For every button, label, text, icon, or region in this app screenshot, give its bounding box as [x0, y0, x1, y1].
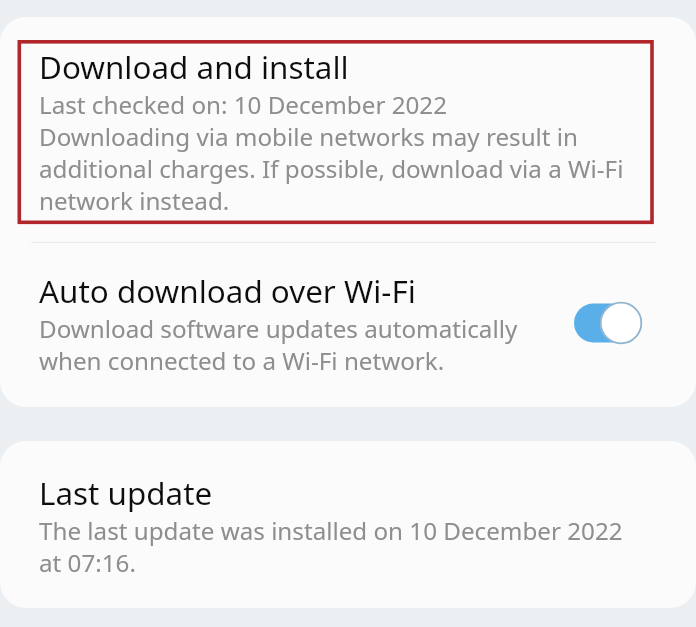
button[interactable]: Download and install — [0, 17, 696, 242]
button[interactable]: Auto download over Wi-Fi toggle — [573, 301, 642, 345]
staticText: Last checked on: 10 December 2022 Downlo… — [39, 88, 639, 217]
staticText: The last update was installed on 10 Dece… — [39, 514, 639, 579]
staticText: Auto download over Wi-Fi — [39, 269, 416, 312]
button[interactable]: Last update — [0, 441, 696, 608]
staticText: Download and install — [39, 45, 349, 88]
staticText: Last update — [39, 471, 213, 514]
button[interactable]: Auto download over Wi-Fi — [0, 243, 696, 407]
staticText: Download software updates automatically … — [39, 312, 561, 377]
